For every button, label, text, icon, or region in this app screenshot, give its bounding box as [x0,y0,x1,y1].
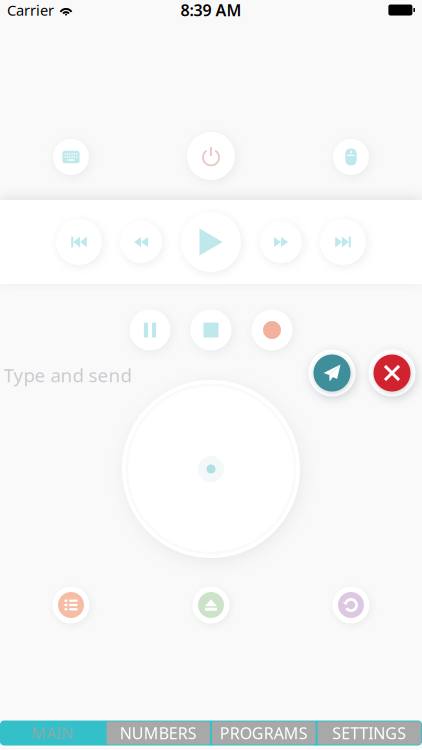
button[interactable]: Mouse [333,139,369,175]
button[interactable]: Record [251,309,292,350]
button[interactable]: SETTINGS [317,721,421,744]
button[interactable]: Eject [192,586,229,623]
button[interactable]: NUMBERS [106,721,210,744]
staticText: SETTINGS [332,722,406,744]
button[interactable]: Power [187,132,235,180]
button[interactable]: Play [181,212,241,272]
button[interactable]: Programs list [52,586,89,623]
staticText: NUMBERS [120,722,197,744]
button[interactable]: Send [308,349,355,396]
button[interactable]: Stop [190,309,231,350]
button[interactable]: Next track [320,219,366,265]
staticText: Type and send [3,363,131,387]
button[interactable]: Rewind [120,221,162,263]
staticText: Carrier [7,0,54,20]
staticText: MAIN [32,722,74,744]
button[interactable]: Fast forward [260,221,302,263]
staticText: 8:39 AM [180,0,241,21]
staticText: PROGRAMS [220,722,308,744]
button[interactable]: Previous track [56,219,102,265]
button[interactable]: Refresh [332,586,369,623]
button[interactable]: PROGRAMS [212,721,315,744]
button[interactable]: Keyboard [53,139,89,175]
button[interactable]: Cancel [368,349,415,396]
button[interactable]: Pause [129,309,170,350]
button[interactable]: MAIN [1,721,104,744]
